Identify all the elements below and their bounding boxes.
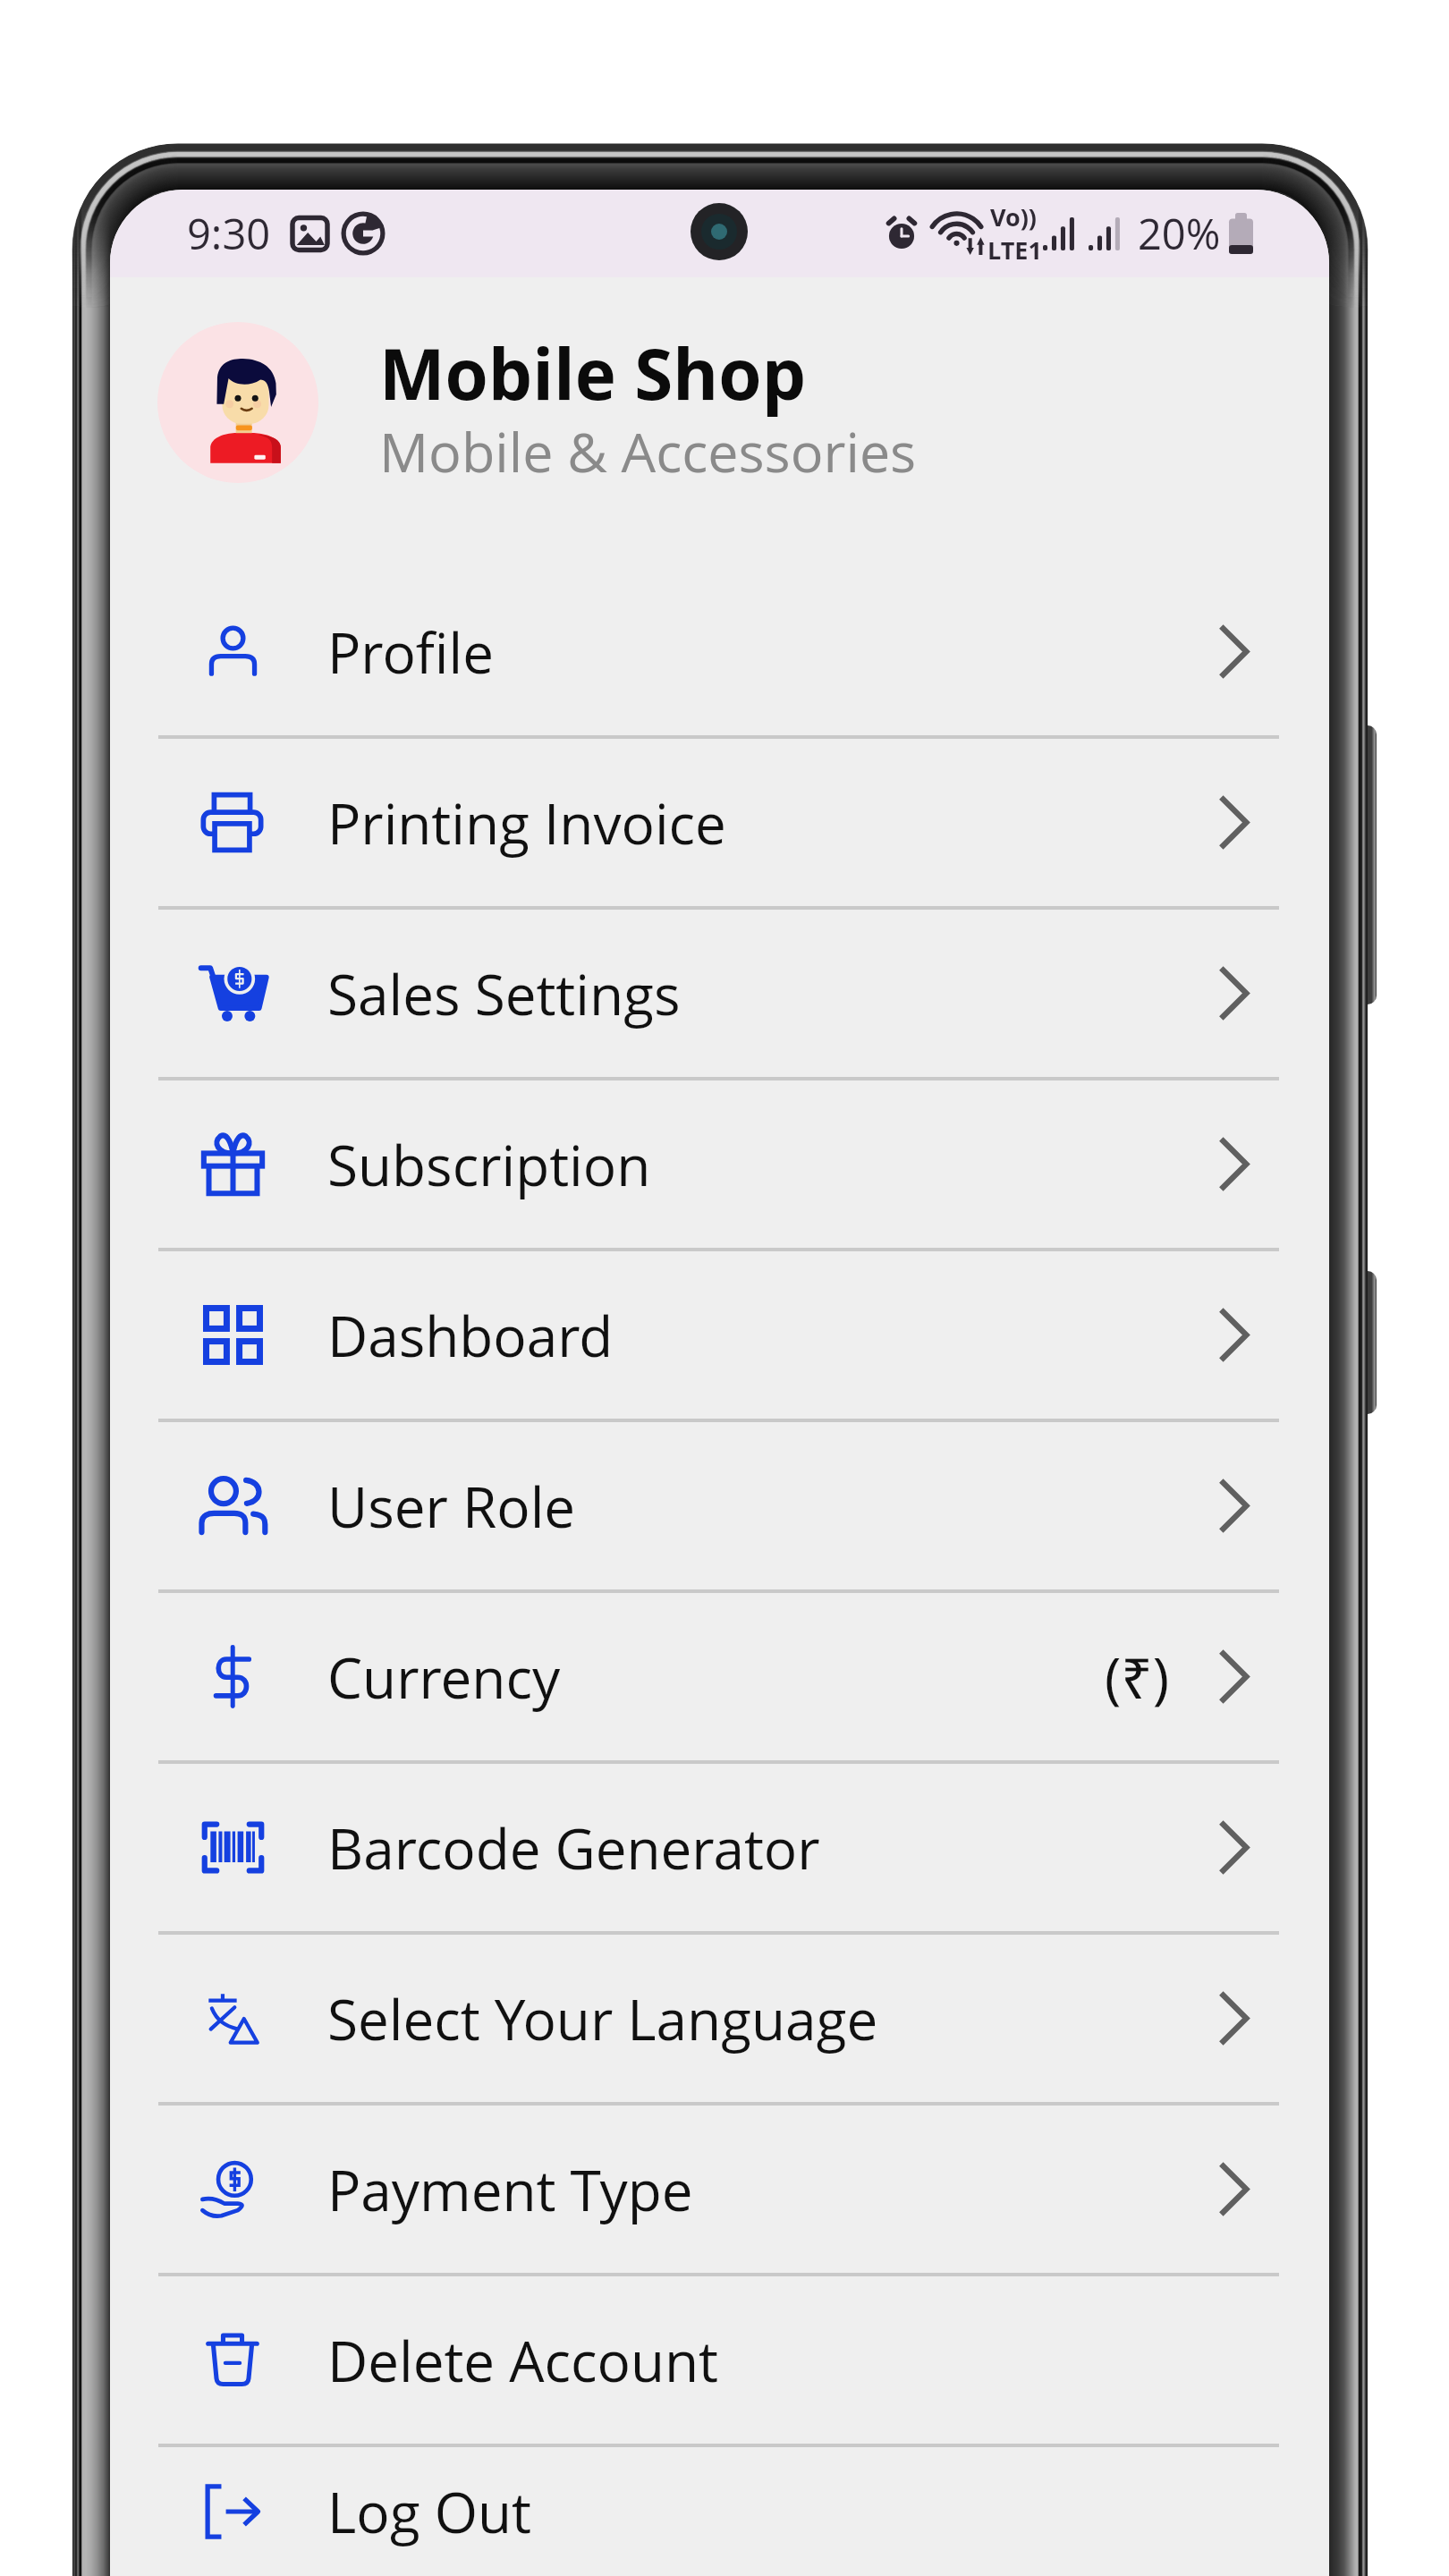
- staticText: Select Your Language: [327, 1981, 878, 2056]
- other: Open User Role: [1217, 1479, 1250, 1533]
- staticText: LTE1: [987, 233, 1039, 267]
- button[interactable]: Select Your Language: [110, 1935, 1329, 2102]
- button[interactable]: User Role: [110, 1422, 1329, 1589]
- staticText: User Role: [327, 1469, 576, 1544]
- staticText: Printing Invoice: [327, 785, 726, 860]
- staticText: 9:30: [187, 205, 271, 262]
- button[interactable]: Delete Account: [110, 2276, 1329, 2444]
- other: Open Currency: [1217, 1649, 1250, 1704]
- staticText: Sales Settings: [327, 956, 681, 1031]
- button[interactable]: Currency: [110, 1593, 1329, 1760]
- staticText: Profile: [327, 614, 494, 690]
- staticText: Mobile Shop: [379, 326, 807, 420]
- button[interactable]: Dashboard: [110, 1251, 1329, 1419]
- other: Open Subscription: [1217, 1137, 1250, 1191]
- staticText: Barcode Generator: [327, 1810, 820, 1885]
- staticText: Delete Account: [327, 2323, 718, 2398]
- staticText: Dashboard: [327, 1298, 614, 1373]
- button[interactable]: Subscription: [110, 1080, 1329, 1248]
- button[interactable]: Profile: [110, 568, 1329, 735]
- staticText: Log Out: [327, 2474, 531, 2549]
- staticText: Payment Type: [327, 2152, 693, 2227]
- button[interactable]: Log Out: [110, 2447, 1329, 2576]
- other: Open Payment Type: [1217, 2162, 1250, 2216]
- other: Open Select Your Language: [1217, 1991, 1250, 2046]
- button[interactable]: Printing Invoice: [110, 739, 1329, 906]
- other: Open Sales Settings: [1217, 966, 1250, 1021]
- button[interactable]: Payment Type: [110, 2106, 1329, 2273]
- staticText: Vo)): [990, 200, 1038, 233]
- other: Open Profile: [1217, 624, 1250, 679]
- other: Open Printing Invoice: [1217, 795, 1250, 850]
- staticText: Subscription: [327, 1127, 651, 1202]
- other: Open Barcode Generator: [1217, 1820, 1250, 1875]
- staticText: 20%: [1138, 205, 1221, 262]
- staticText: (₹): [1105, 1640, 1170, 1715]
- staticText: Currency: [327, 1640, 561, 1715]
- button[interactable]: Sales Settings: [110, 910, 1329, 1077]
- other: Open Dashboard: [1217, 1308, 1250, 1362]
- staticText: Mobile & Accessories: [379, 414, 917, 488]
- button[interactable]: Barcode Generator: [110, 1764, 1329, 1931]
